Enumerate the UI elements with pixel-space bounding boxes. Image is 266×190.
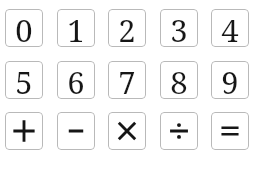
button[interactable]: Minus <box>57 112 95 150</box>
staticText: 0 <box>15 9 33 47</box>
staticText: 5 <box>15 61 33 99</box>
button[interactable]: Divide <box>160 112 198 150</box>
button[interactable]: Plus <box>5 112 43 150</box>
button[interactable]: Digit 2 <box>108 9 146 47</box>
button[interactable]: Digit 4 <box>211 9 249 47</box>
staticText: 4 <box>221 9 239 47</box>
staticText: 1 <box>67 9 85 47</box>
staticText: 3 <box>170 9 188 47</box>
button[interactable]: Digit 6 <box>57 61 95 99</box>
button[interactable]: Digit 1 <box>57 9 95 47</box>
staticText: 6 <box>67 61 85 99</box>
staticText: 7 <box>118 61 136 99</box>
button[interactable]: Digit 5 <box>5 61 43 99</box>
button[interactable]: Digit 0 <box>5 9 43 47</box>
staticText: 8 <box>170 61 188 99</box>
staticText: 9 <box>221 61 239 99</box>
button[interactable]: Digit 9 <box>211 61 249 99</box>
staticText: 2 <box>118 9 136 47</box>
button[interactable]: Digit 7 <box>108 61 146 99</box>
button[interactable]: Multiply <box>108 112 146 150</box>
button[interactable]: Digit 8 <box>160 61 198 99</box>
button[interactable]: Equals <box>211 112 249 150</box>
button[interactable]: Digit 3 <box>160 9 198 47</box>
